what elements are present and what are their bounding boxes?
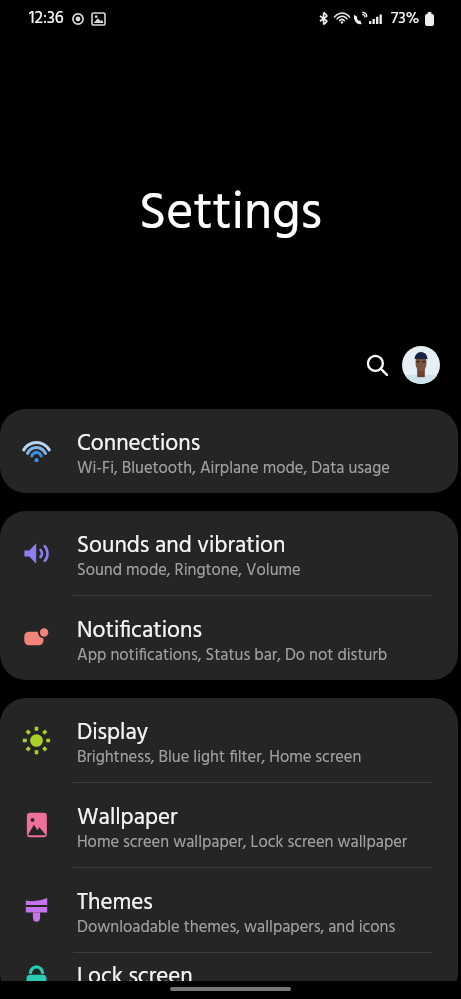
staticText: Sounds and vibration <box>77 528 286 565</box>
staticText: Screen lock type, Always On Display <box>77 989 332 998</box>
staticText: 73% <box>391 6 420 32</box>
button[interactable]: Lock screen <box>0 953 458 999</box>
staticText: Themes <box>77 885 153 922</box>
staticText: Connections <box>77 426 201 463</box>
button[interactable]: Profile <box>402 346 440 384</box>
button[interactable]: Wallpaper <box>0 783 458 868</box>
staticText: Display <box>77 715 149 752</box>
staticText: Downloadable themes, wallpapers, and ico… <box>77 915 396 941</box>
staticText: Wi-Fi, Bluetooth, Airplane mode, Data us… <box>77 456 390 482</box>
staticText: Lock screen <box>77 959 193 996</box>
button[interactable]: Notifications <box>0 596 458 680</box>
button[interactable]: Search <box>355 343 399 387</box>
staticText: Sound mode, Ringtone, Volume <box>77 558 301 584</box>
staticText: Home screen wallpaper, Lock screen wallp… <box>77 830 408 856</box>
staticText: 12:36 <box>29 5 64 32</box>
staticText: Settings <box>139 173 322 256</box>
button[interactable]: Themes <box>0 868 458 953</box>
staticText: Wallpaper <box>77 800 178 837</box>
staticText: Notifications <box>77 613 202 650</box>
button[interactable]: Sounds and vibration <box>0 511 458 596</box>
staticText: Brightness, Blue light filter, Home scre… <box>77 745 362 771</box>
staticText: App notifications, Status bar, Do not di… <box>77 643 388 669</box>
button[interactable]: Display <box>0 698 458 783</box>
button[interactable]: Connections <box>0 409 458 493</box>
